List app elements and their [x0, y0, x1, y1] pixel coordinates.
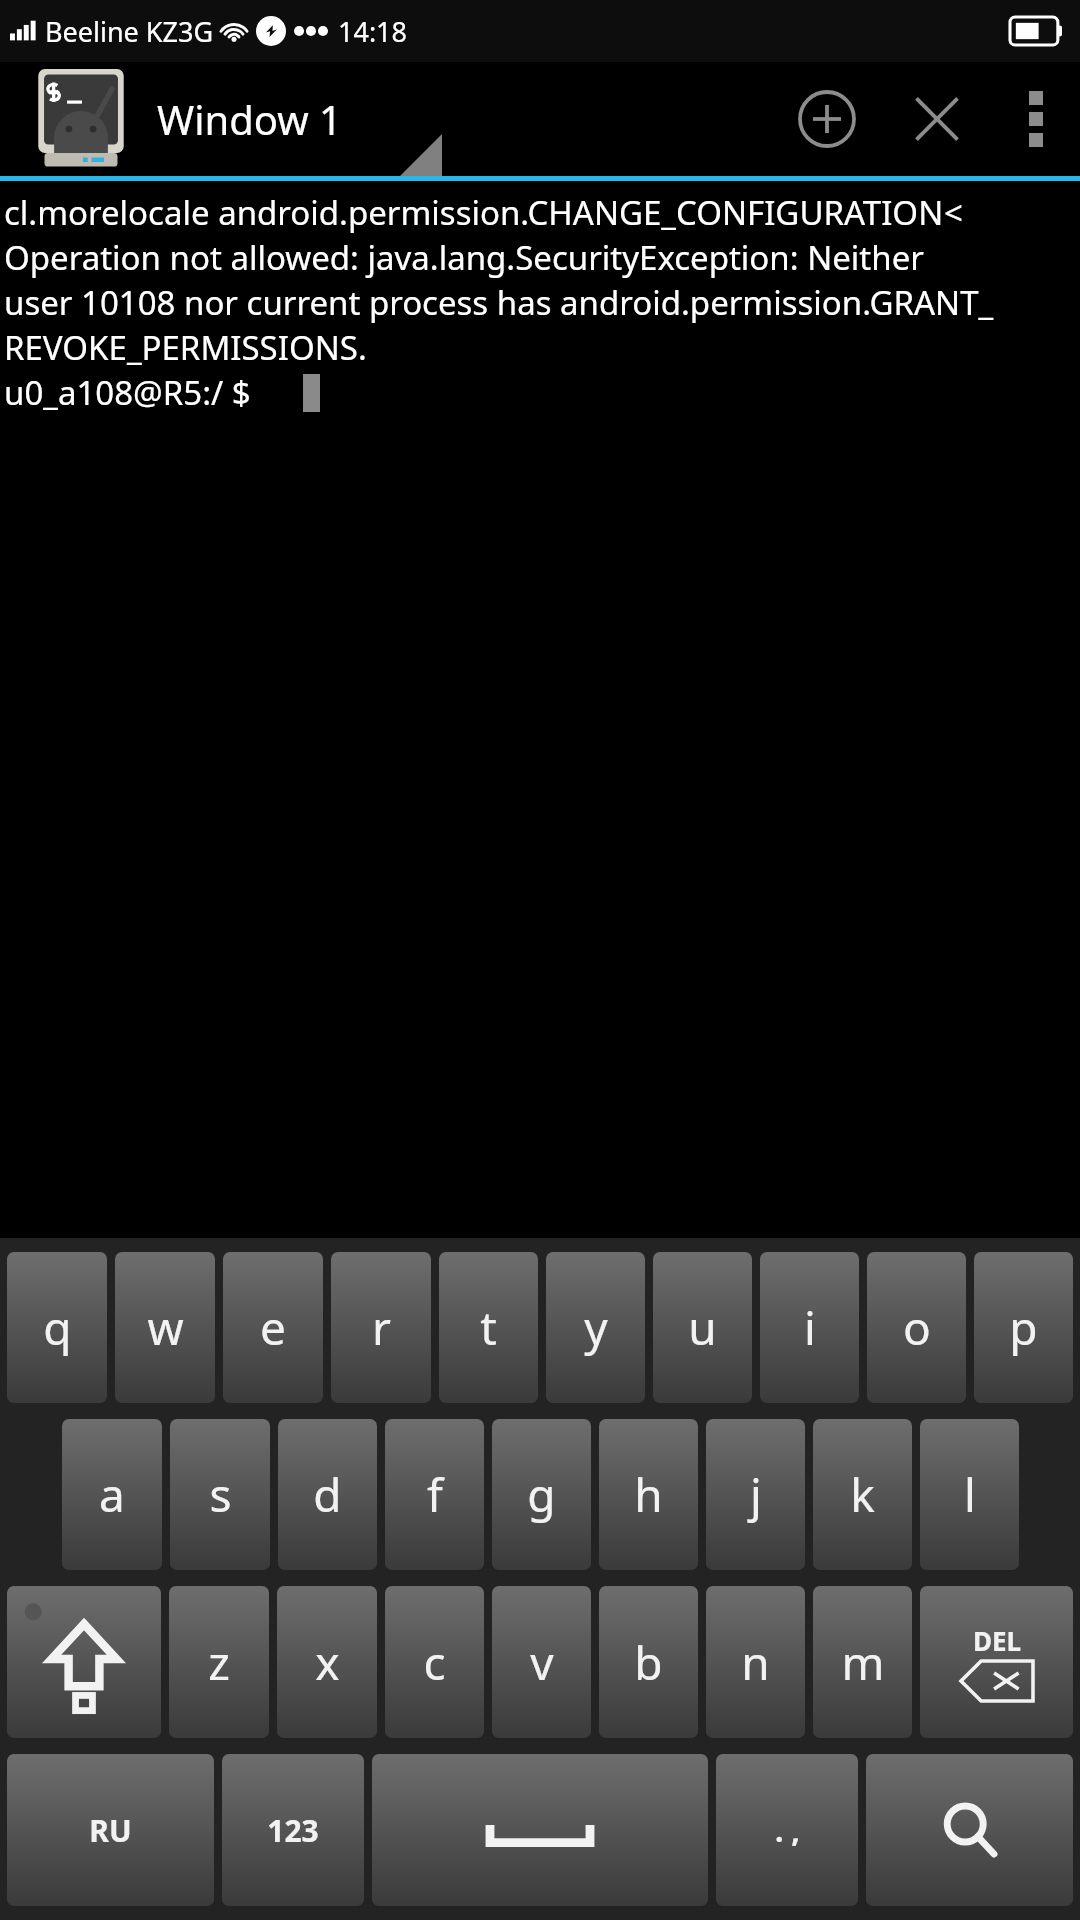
staticText: DEL: [973, 1623, 1022, 1658]
button[interactable]: p: [974, 1252, 1073, 1403]
staticText: q: [43, 1296, 72, 1359]
button[interactable]: o: [867, 1252, 966, 1403]
staticText: a: [99, 1463, 125, 1526]
button[interactable]: Space: [372, 1754, 708, 1906]
button[interactable]: Search: [866, 1754, 1073, 1906]
button[interactable]: x: [277, 1586, 377, 1738]
button[interactable]: l: [920, 1419, 1019, 1570]
button[interactable]: b: [599, 1586, 698, 1738]
button[interactable]: 123: [222, 1754, 364, 1906]
staticText: w: [147, 1296, 184, 1359]
staticText: l: [964, 1463, 976, 1526]
staticText: v: [530, 1631, 554, 1694]
button[interactable]: w: [115, 1252, 215, 1403]
staticText: y: [584, 1296, 608, 1359]
staticText: Operation not allowed: java.lang.Securit…: [4, 235, 924, 280]
button[interactable]: h: [599, 1419, 698, 1570]
button[interactable]: Shift: [7, 1586, 161, 1738]
staticText: e: [260, 1296, 286, 1359]
button[interactable]: r: [331, 1252, 431, 1403]
button[interactable]: cl.morelocale android.permission.CHANGE_…: [0, 181, 1080, 1238]
staticText: u0_a108@R5:/ $: [4, 370, 251, 415]
staticText: b: [634, 1631, 663, 1694]
staticText: p: [1009, 1296, 1038, 1359]
staticText: h: [634, 1463, 663, 1526]
button[interactable]: f: [385, 1419, 484, 1570]
button[interactable]: v: [492, 1586, 591, 1738]
staticText: Beeline KZ3G: [45, 13, 214, 50]
staticText: z: [208, 1631, 230, 1694]
button[interactable]: s: [170, 1419, 270, 1570]
button[interactable]: g: [492, 1419, 591, 1570]
button[interactable]: a: [62, 1419, 162, 1570]
staticText: j: [750, 1463, 762, 1526]
staticText: d: [313, 1463, 342, 1526]
button[interactable]: m: [813, 1586, 912, 1738]
button[interactable]: k: [813, 1419, 912, 1570]
button[interactable]: j: [706, 1419, 805, 1570]
staticText: REVOKE_PERMISSIONS.: [4, 325, 367, 370]
staticText: o: [903, 1296, 931, 1359]
button[interactable]: i: [760, 1252, 859, 1403]
staticText: n: [741, 1631, 770, 1694]
staticText: m: [841, 1631, 885, 1694]
button[interactable]: . ,: [716, 1754, 858, 1906]
staticText: user 10108 nor current process has andro…: [4, 280, 994, 325]
staticText: cl.morelocale android.permission.CHANGE_…: [4, 190, 944, 235]
button[interactable]: z: [169, 1586, 269, 1738]
staticText: k: [850, 1463, 875, 1526]
button[interactable]: u: [653, 1252, 752, 1403]
staticText: . ,: [775, 1810, 800, 1851]
staticText: u: [688, 1296, 717, 1359]
staticText: 123: [267, 1810, 319, 1851]
button[interactable]: Delete: [920, 1586, 1073, 1738]
staticText: r: [372, 1296, 391, 1359]
button[interactable]: t: [439, 1252, 538, 1403]
button[interactable]: More options: [992, 62, 1080, 176]
staticText: g: [527, 1463, 556, 1526]
button[interactable]: d: [278, 1419, 377, 1570]
staticText: i: [804, 1296, 816, 1359]
button[interactable]: Close window: [882, 62, 992, 176]
button[interactable]: n: [706, 1586, 805, 1738]
staticText: RU: [89, 1810, 132, 1851]
button[interactable]: New window: [772, 62, 882, 176]
button[interactable]: Window 1: [0, 62, 772, 176]
button[interactable]: y: [546, 1252, 645, 1403]
staticText: 14:18: [338, 13, 408, 50]
button[interactable]: q: [7, 1252, 107, 1403]
staticText: s: [209, 1463, 232, 1526]
button[interactable]: e: [223, 1252, 323, 1403]
staticText: Window 1: [157, 92, 342, 146]
staticText: t: [480, 1296, 497, 1359]
button[interactable]: RU: [7, 1754, 214, 1906]
button[interactable]: c: [385, 1586, 484, 1738]
staticText: c: [423, 1631, 446, 1694]
staticText: f: [427, 1463, 443, 1526]
staticText: x: [315, 1631, 340, 1694]
